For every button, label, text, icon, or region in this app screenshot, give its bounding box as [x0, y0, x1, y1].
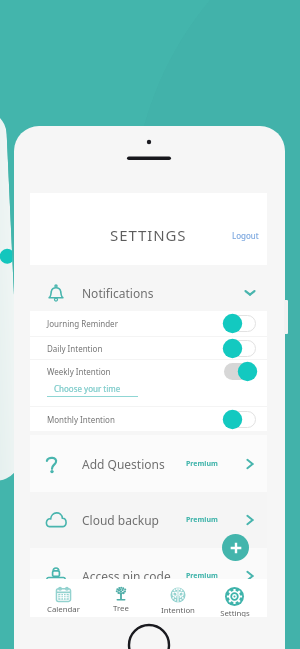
- staticText: Journing Reminder: [47, 318, 118, 329]
- button[interactable]: Access pin code: [30, 548, 267, 604]
- staticText: Premium: [186, 571, 218, 581]
- staticText: Logout: [232, 230, 259, 241]
- staticText: Weekly Intention: [47, 366, 111, 377]
- staticText: Access pin code: [82, 568, 171, 584]
- button[interactable]: Intention: [149, 579, 206, 617]
- other: Collapse: [239, 282, 261, 304]
- staticText: Premium: [186, 515, 218, 525]
- button[interactable]: Notifications: [30, 265, 267, 311]
- button[interactable]: Settings: [206, 579, 263, 617]
- button[interactable]: Add: [222, 534, 249, 561]
- staticText: Tree: [113, 603, 129, 614]
- button[interactable]: Monthly Intention: [30, 407, 267, 431]
- staticText: Add Questions: [82, 456, 165, 472]
- button[interactable]: Choose your time: [47, 383, 138, 397]
- staticText: Choose your time: [54, 383, 121, 394]
- staticText: Daily Intention: [47, 343, 103, 354]
- button[interactable]: [224, 314, 256, 333]
- button[interactable]: Logout: [224, 224, 267, 247]
- button[interactable]: Journing Reminder: [30, 311, 267, 336]
- staticText: Settings: [220, 608, 250, 617]
- staticText: Monthly Intention: [47, 414, 115, 425]
- button[interactable]: [224, 362, 256, 381]
- button[interactable]: Calendar: [34, 579, 92, 617]
- button[interactable]: [224, 410, 256, 429]
- staticText: Notifications: [82, 285, 154, 301]
- button[interactable]: [224, 339, 256, 358]
- staticText: Premium: [186, 459, 218, 469]
- button[interactable]: Add Questions: [30, 435, 267, 492]
- button[interactable]: Cloud backup: [30, 492, 267, 548]
- staticText: Intention: [161, 605, 195, 616]
- staticText: Cloud backup: [82, 512, 159, 528]
- button[interactable]: Tree: [92, 579, 149, 617]
- button[interactable]: Weekly Intention: [30, 360, 267, 383]
- staticText: Calendar: [47, 604, 80, 615]
- staticText: SETTINGS: [110, 225, 187, 245]
- button[interactable]: Daily Intention: [30, 337, 267, 359]
